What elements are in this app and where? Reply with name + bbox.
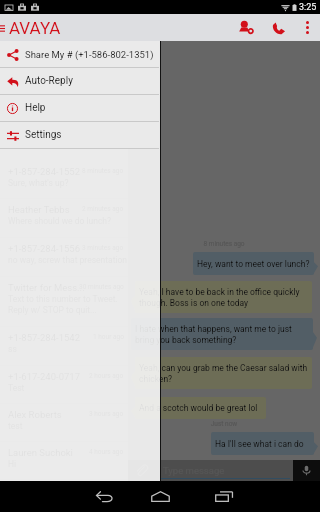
button[interactable]: Navigation menu [0,16,7,40]
staticText: Ha I'll see what i can do [215,439,304,449]
staticText: Yeah, can you grab me the Caesar salad w… [139,363,308,384]
button[interactable]: Auto-Reply [0,68,159,94]
button[interactable]: And a scotch would be great lol [135,397,266,419]
button[interactable]: Home [141,481,179,512]
button[interactable]: Contact settings [228,14,262,41]
button[interactable]: Share My # (+1-586-802-1351) [0,41,159,67]
button[interactable]: I hate when that happens, want me to jus… [131,318,313,350]
button[interactable]: Call [262,14,295,41]
button[interactable]: Help [0,95,159,121]
button[interactable]: Recent apps [205,481,243,512]
staticText: 3:25 [299,2,317,13]
button[interactable]: Ha I'll see what i can do [211,432,314,455]
button[interactable]: Voice input [293,460,320,481]
button[interactable]: Type message [155,460,293,481]
staticText: Settings [25,129,62,141]
staticText: Yeah, I have to be back in the office qu… [139,287,300,308]
staticText: AVAYA [9,18,61,38]
staticText: I hate when that happens, want me to jus… [135,324,292,345]
button[interactable]: Yeah, can you grab me the Caesar salad w… [135,357,312,389]
staticText: Auto-Reply [25,75,73,87]
button[interactable]: Hey, want to meet over lunch? [193,252,314,275]
staticText: Share My # (+1-586-802-1351) [25,49,154,60]
staticText: Just now [128,420,320,428]
staticText: 8 minutes ago [128,240,320,248]
button[interactable]: More options [295,14,320,41]
button[interactable]: Yeah, I have to be back in the office qu… [135,281,312,313]
staticText: Hey, want to meet over lunch? [197,259,310,269]
staticText: Help [25,102,46,114]
button[interactable]: Settings [0,122,159,148]
button[interactable]: Back [85,481,123,512]
staticText: And a scotch would be great lol [139,403,258,413]
